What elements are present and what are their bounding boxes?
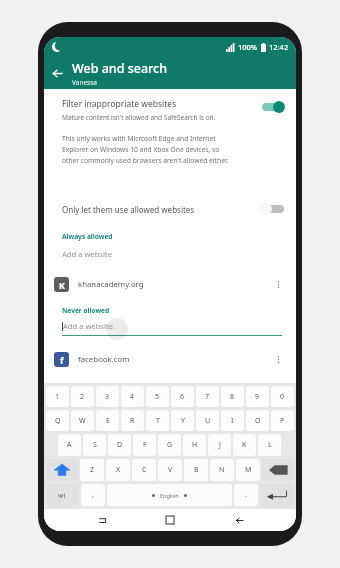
button[interactable]: U (196, 410, 219, 431)
button[interactable]: 3 (96, 386, 119, 407)
button[interactable]: 6 (171, 386, 194, 407)
staticText: G (167, 440, 173, 450)
button[interactable]: G (158, 434, 181, 456)
staticText: . (245, 490, 247, 500)
staticText: 100% (238, 42, 258, 52)
button[interactable]: A (58, 434, 81, 456)
staticText: R (130, 416, 135, 426)
button[interactable]: 0 (271, 386, 294, 407)
button[interactable]: Y (171, 410, 194, 431)
button[interactable]: . (234, 484, 258, 506)
button[interactable]: B (184, 459, 208, 481)
button[interactable]: Only let them use allowed websites (44, 198, 296, 220)
button[interactable]: F (133, 434, 156, 456)
button[interactable]: Recents (91, 509, 113, 531)
button[interactable]: S (83, 434, 106, 456)
button[interactable]: K (233, 434, 256, 456)
button[interactable]: Add a website (62, 249, 282, 263)
button[interactable]: E (96, 410, 119, 431)
button[interactable]: Q (46, 410, 69, 431)
button[interactable]: Back (228, 509, 250, 531)
button[interactable]: W (71, 410, 94, 431)
button[interactable]: , (81, 484, 105, 506)
button[interactable]: D (108, 434, 131, 456)
staticText: Add a website (63, 321, 113, 331)
button[interactable]: O (246, 410, 269, 431)
button[interactable]: N (210, 459, 234, 481)
staticText: S (93, 440, 97, 450)
staticText: Explorer on Windows 10 and Xbox One devi… (62, 145, 220, 154)
button[interactable]: Backspace (262, 459, 294, 481)
button[interactable]: P (271, 410, 294, 431)
staticText: 0 (280, 392, 285, 402)
staticText: K (242, 440, 247, 450)
button[interactable]: English (107, 484, 232, 506)
staticText: N (219, 465, 225, 475)
staticText: English (160, 492, 179, 499)
button[interactable]: !#1 (46, 484, 79, 506)
staticText: F (143, 440, 147, 450)
staticText: 8 (230, 392, 235, 402)
button[interactable]: X (106, 459, 130, 481)
button[interactable]: 7 (196, 386, 219, 407)
staticText: I (231, 416, 234, 426)
staticText: Web and search (72, 60, 168, 77)
staticText: O (255, 416, 261, 426)
button[interactable]: More options (270, 351, 286, 367)
button[interactable]: 4 (121, 386, 144, 407)
staticText: Vanessa (72, 78, 97, 87)
staticText: Always allowed (62, 232, 113, 241)
button[interactable]: 1 (46, 386, 69, 407)
button[interactable]: Z (80, 459, 104, 481)
button[interactable]: V (158, 459, 182, 481)
staticText: T (156, 416, 160, 426)
button[interactable]: 9 (246, 386, 269, 407)
button[interactable]: I (221, 410, 244, 431)
staticText: 1 (55, 392, 60, 402)
staticText: 2 (80, 392, 85, 402)
staticText: 9 (255, 392, 260, 402)
staticText: L (268, 440, 272, 450)
button[interactable]: Home (159, 509, 181, 531)
button[interactable]: More options (270, 276, 286, 292)
button[interactable]: K (44, 271, 296, 297)
button[interactable]: Filter inappropriate websites (44, 89, 296, 126)
staticText: K (59, 279, 65, 291)
staticText: A (67, 440, 72, 450)
button[interactable]: T (146, 410, 169, 431)
staticText: J (219, 440, 221, 450)
staticText: D (117, 440, 123, 450)
button[interactable]: Toggle off (260, 202, 286, 216)
staticText: P (280, 416, 285, 426)
button[interactable]: Add a website (62, 321, 282, 343)
staticText: V (168, 465, 173, 475)
staticText: 5 (155, 392, 160, 402)
button[interactable]: J (208, 434, 231, 456)
staticText: , (92, 490, 94, 500)
button[interactable]: f (44, 346, 296, 372)
button[interactable]: R (121, 410, 144, 431)
button[interactable]: C (132, 459, 156, 481)
staticText: W (79, 416, 86, 426)
staticText: Only let them use allowed websites (62, 204, 260, 215)
button[interactable]: H (183, 434, 206, 456)
button[interactable]: Enter (260, 484, 294, 506)
staticText: 7 (205, 392, 210, 402)
button[interactable]: L (258, 434, 281, 456)
button[interactable]: 2 (71, 386, 94, 407)
staticText: Filter inappropriate websites (62, 98, 177, 110)
staticText: Never allowed (62, 306, 110, 315)
staticText: Q (55, 416, 61, 426)
button[interactable]: 8 (221, 386, 244, 407)
staticText: X (116, 465, 121, 475)
staticText: !#1 (58, 492, 67, 499)
button[interactable]: Shift (46, 459, 78, 481)
button[interactable]: 5 (146, 386, 169, 407)
button[interactable]: M (236, 459, 260, 481)
staticText: H (192, 440, 198, 450)
staticText: Add a website (62, 249, 112, 259)
button[interactable]: Back (44, 60, 70, 86)
staticText: 4 (130, 392, 135, 402)
button[interactable]: Toggle on (260, 100, 286, 114)
staticText: Y (181, 416, 185, 426)
